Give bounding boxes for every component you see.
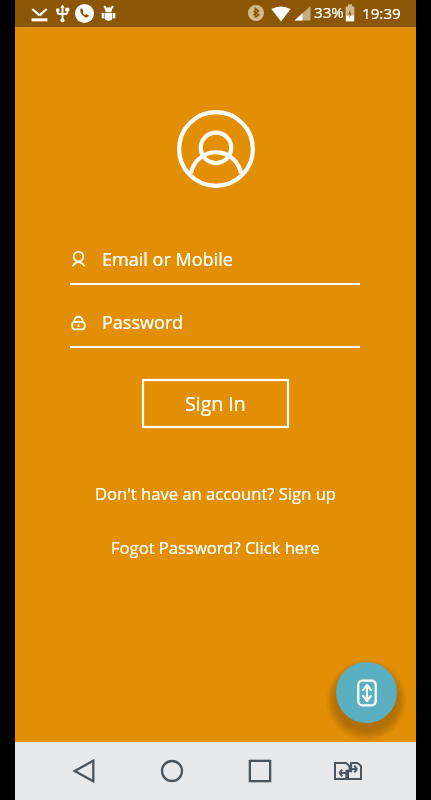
button[interactable]: Don't have an account? Sign up <box>89 479 343 508</box>
staticText: 19:39 <box>362 3 401 24</box>
staticText: Don't have an account? Sign up <box>95 482 337 505</box>
button[interactable]: Home <box>128 742 216 800</box>
staticText: Sign In <box>185 390 246 417</box>
staticText: Password <box>102 310 183 335</box>
button[interactable]: Sign In <box>143 380 288 427</box>
button[interactable]: Split screen <box>304 742 392 800</box>
staticText: 33% <box>314 2 344 23</box>
staticText: Fogot Password? Click here <box>111 536 320 559</box>
button[interactable]: Rotate screen <box>336 662 397 723</box>
staticText: Email or Mobile <box>102 247 233 272</box>
button[interactable]: Recent apps <box>216 742 304 800</box>
button[interactable]: Back <box>39 742 128 800</box>
button[interactable]: Fogot Password? Click here <box>105 533 326 562</box>
